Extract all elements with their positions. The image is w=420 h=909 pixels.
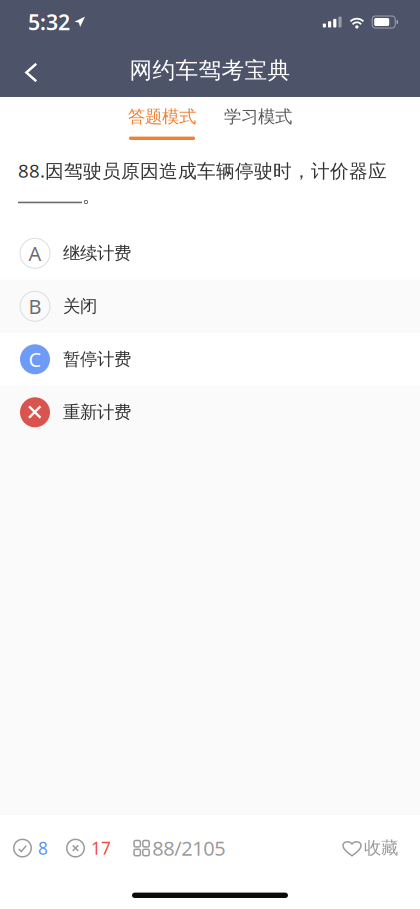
staticText: 网约车驾考宝典	[129, 57, 290, 84]
staticText: 88/2105	[152, 835, 225, 861]
staticText: 收藏	[364, 837, 398, 859]
button[interactable]: 重新计费	[0, 386, 420, 439]
button[interactable]: 收藏	[337, 821, 403, 865]
staticText: A	[28, 240, 41, 267]
staticText: 5:32	[28, 8, 70, 36]
staticText: 暂停计费	[63, 349, 131, 370]
staticText: 学习模式	[224, 106, 292, 127]
button[interactable]: B	[0, 280, 420, 333]
staticText: C	[28, 346, 41, 373]
staticText: 17	[91, 837, 111, 860]
button[interactable]: 88/2105	[129, 819, 230, 867]
button[interactable]: 学习模式	[224, 97, 292, 147]
staticText: 8	[38, 837, 48, 860]
staticText: 答题模式	[128, 106, 196, 127]
button[interactable]: C	[0, 333, 420, 386]
staticText: 88.因驾驶员原因造成车辆停驶时，计价器应	[18, 158, 387, 183]
button[interactable]: 17	[61, 821, 116, 866]
button[interactable]: Back	[0, 49, 57, 92]
staticText: 关闭	[63, 296, 97, 317]
staticText: 。	[82, 184, 101, 207]
button[interactable]: A	[0, 227, 420, 280]
staticText: 继续计费	[63, 243, 131, 264]
button[interactable]: 答题模式	[128, 97, 196, 147]
staticText: B	[28, 293, 41, 320]
button[interactable]: 8	[8, 821, 53, 866]
staticText: 重新计费	[63, 402, 131, 423]
